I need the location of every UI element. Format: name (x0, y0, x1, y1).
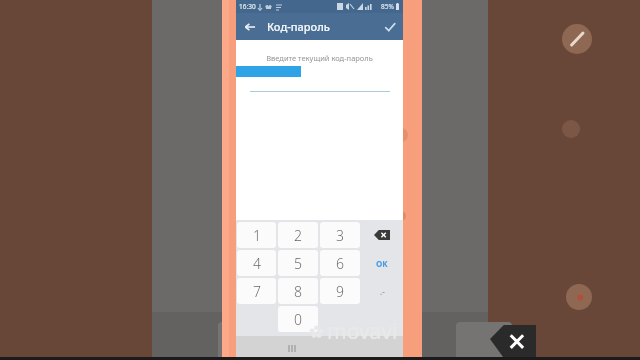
staticText: 16:30 (239, 2, 256, 11)
button[interactable]: 4 (237, 250, 276, 276)
button[interactable]: 1 (237, 222, 276, 248)
button[interactable]: 7 (237, 278, 276, 304)
staticText: 85% (381, 2, 394, 11)
staticText: 8 (294, 282, 302, 301)
staticText: movavi (327, 317, 398, 346)
button[interactable]: 9 (320, 278, 360, 304)
staticText: 3 (336, 226, 344, 245)
staticText: Код-пароль (267, 19, 330, 34)
button[interactable]: Удалить (362, 222, 402, 248)
staticText: 1 (253, 226, 261, 245)
staticText: 9 (336, 282, 344, 301)
staticText: 2 (294, 226, 302, 245)
staticText: 5 (294, 254, 302, 273)
button[interactable]: .- (362, 278, 402, 304)
button[interactable]: Готово (376, 13, 403, 40)
button[interactable]: OK (362, 250, 402, 276)
button[interactable]: 5 (278, 250, 318, 276)
button[interactable]: Недавние приложения (281, 338, 303, 358)
staticText: 7 (253, 282, 261, 301)
staticText: Введите текущий код-пароль (236, 53, 403, 63)
button[interactable]: 8 (278, 278, 318, 304)
staticText: 4 (253, 254, 261, 273)
button[interactable]: 0 (278, 306, 318, 332)
button[interactable]: 2 (278, 222, 318, 248)
staticText: OK (376, 258, 388, 269)
staticText: 0 (294, 310, 302, 329)
button[interactable]: 6 (320, 250, 360, 276)
staticText: 6 (336, 254, 344, 273)
button[interactable]: 3 (320, 222, 360, 248)
button[interactable]: Назад (236, 13, 263, 40)
staticText: .- (380, 286, 385, 297)
